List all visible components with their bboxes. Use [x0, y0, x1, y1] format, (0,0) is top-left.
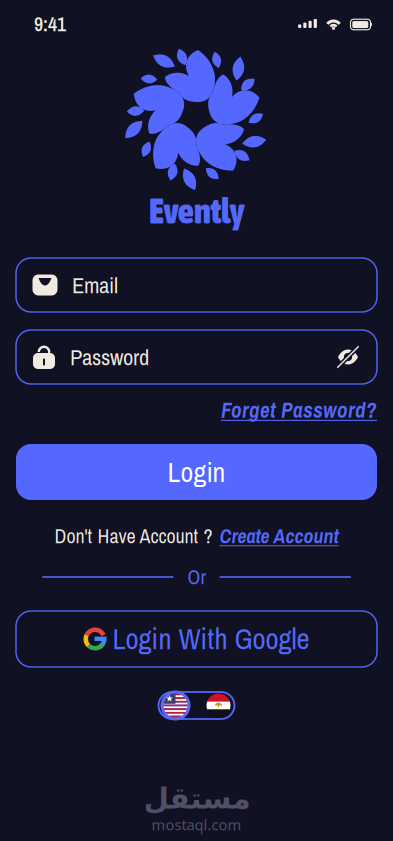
staticText: Login	[167, 453, 225, 491]
button[interactable]: Login	[16, 444, 377, 500]
button[interactable]: Language	[158, 692, 234, 722]
staticText: Email	[72, 270, 118, 300]
staticText: Evently	[149, 191, 244, 231]
staticText: Login With Google	[112, 620, 309, 658]
staticText: Or	[187, 563, 205, 590]
button[interactable]: Forget Password?	[16, 400, 377, 420]
staticText: Password	[70, 342, 149, 372]
button[interactable]: Login With Google	[16, 611, 377, 667]
staticText: Create Account	[219, 522, 338, 549]
staticText: Forget Password?	[221, 396, 377, 424]
staticText: مستقل	[143, 782, 250, 815]
staticText: mostaql.com	[151, 815, 241, 834]
button[interactable]: Create Account	[219, 522, 338, 549]
button[interactable]: Show password	[335, 344, 361, 370]
staticText: Don't Have Account ?	[54, 522, 212, 549]
staticText: 9:41	[34, 10, 66, 37]
